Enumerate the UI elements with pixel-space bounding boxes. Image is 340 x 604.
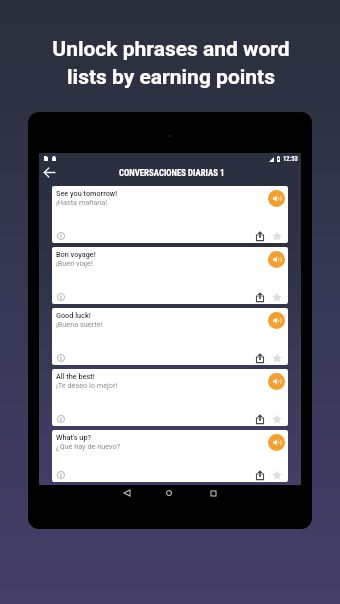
staticText: ¡Buen viaje! (56, 259, 93, 268)
button[interactable]: Info (54, 229, 67, 242)
staticText: Unlock phrases and word lists by earning… (1, 37, 340, 89)
staticText: ¡Hasta mañana! (56, 198, 108, 207)
button[interactable]: Back (40, 163, 58, 181)
staticText: All the best! (56, 372, 95, 381)
button[interactable]: Recents (206, 486, 220, 500)
staticText: CONVERSACIONES DIARIAS 1 (119, 168, 225, 178)
button[interactable]: Play audio (268, 251, 285, 268)
button[interactable]: Favorite (270, 412, 283, 425)
button[interactable]: What's up? (52, 430, 288, 482)
staticText: ¡Te deseo lo mejor! (56, 381, 118, 390)
button[interactable]: Info (54, 290, 67, 303)
staticText: Bon voyage! (56, 250, 96, 259)
button[interactable]: Home (162, 486, 176, 500)
button[interactable]: Info (54, 468, 67, 481)
staticText: See you tomorrow! (56, 189, 118, 198)
button[interactable]: Favorite (270, 229, 283, 242)
button[interactable]: Play audio (268, 190, 285, 207)
button[interactable]: Favorite (270, 468, 283, 481)
button[interactable]: All the best! (52, 369, 288, 426)
staticText: Good luck! (56, 311, 91, 320)
button[interactable]: Info (54, 351, 67, 364)
button[interactable]: Share (253, 412, 266, 425)
button[interactable]: Share (253, 468, 266, 481)
button[interactable]: See you tomorrow! (52, 186, 288, 243)
button[interactable]: Play audio (268, 434, 285, 451)
staticText: ¿Qué hay de nuevo? (56, 442, 121, 451)
button[interactable]: Favorite (270, 351, 283, 364)
button[interactable]: Favorite (270, 290, 283, 303)
button[interactable]: Share (253, 229, 266, 242)
button[interactable]: Back (120, 486, 134, 500)
button[interactable]: Share (253, 351, 266, 364)
button[interactable]: Info (54, 412, 67, 425)
button[interactable]: Play audio (268, 312, 285, 329)
staticText: What's up? (56, 433, 92, 442)
staticText: ¡Buena suerte! (56, 320, 103, 329)
staticText: 12:53 (283, 155, 298, 163)
button[interactable]: Play audio (268, 373, 285, 390)
button[interactable]: Good luck! (52, 308, 288, 365)
button[interactable]: Share (253, 290, 266, 303)
button[interactable]: Bon voyage! (52, 247, 288, 304)
